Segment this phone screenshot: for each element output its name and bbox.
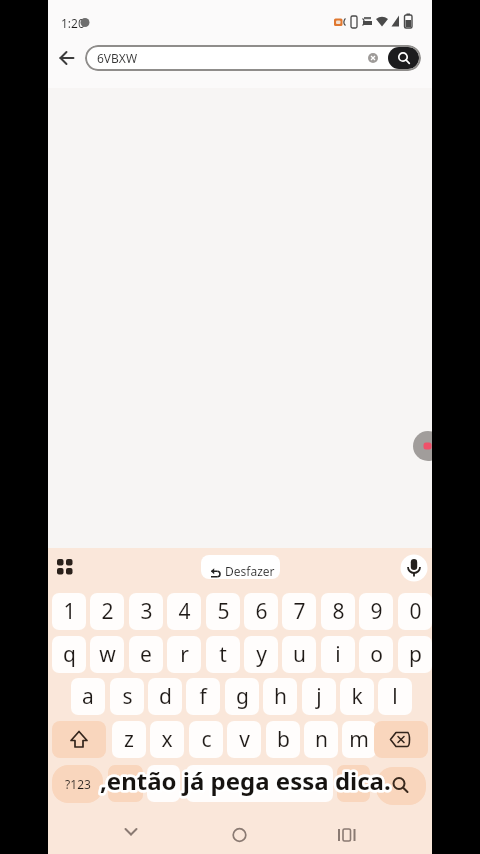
staticText: 5	[217, 597, 230, 626]
button[interactable]: g	[225, 678, 259, 715]
button[interactable]	[374, 721, 428, 758]
staticText: 4	[178, 597, 191, 626]
button[interactable]	[186, 765, 333, 802]
button[interactable]: s	[110, 678, 144, 715]
button[interactable]: 5	[206, 593, 240, 630]
staticText: 1:20	[61, 15, 85, 31]
button[interactable]: o	[359, 636, 393, 673]
staticText: i	[335, 640, 341, 669]
staticText: w	[99, 640, 116, 669]
staticText: g	[236, 682, 249, 711]
staticText: m	[349, 725, 369, 754]
staticText: x	[161, 725, 173, 754]
staticText: 8	[332, 597, 345, 626]
button[interactable]: t	[206, 636, 240, 673]
staticText: p	[409, 640, 422, 669]
staticText: q	[63, 640, 76, 669]
button[interactable]: 2	[90, 593, 124, 630]
button[interactable]	[108, 765, 143, 802]
staticText: ,então já pega essa dica.	[100, 764, 391, 797]
staticText: 7	[293, 597, 306, 626]
staticText: h	[274, 682, 287, 711]
staticText: ,então já pega essa dica.	[100, 764, 391, 797]
staticText: k	[351, 682, 363, 711]
button[interactable]: 6	[244, 593, 278, 630]
button[interactable]: r	[167, 636, 201, 673]
button[interactable]: a	[71, 678, 105, 715]
staticText: t	[219, 640, 227, 669]
button[interactable]: Desfazer	[201, 555, 280, 579]
staticText: n	[315, 725, 328, 754]
button[interactable]: f	[186, 678, 220, 715]
button[interactable]	[324, 816, 370, 850]
staticText: c	[201, 725, 212, 754]
staticText: 1	[63, 597, 76, 626]
button[interactable]: e	[129, 636, 163, 673]
staticText: ?123	[65, 776, 91, 792]
button[interactable]: v	[227, 721, 261, 758]
button[interactable]: w	[90, 636, 124, 673]
staticText: 0	[409, 597, 422, 626]
staticText: z	[124, 725, 134, 754]
staticText: b	[277, 725, 290, 754]
staticText: s	[122, 682, 133, 711]
button[interactable]: m	[342, 721, 376, 758]
button[interactable]: k	[340, 678, 374, 715]
button[interactable]: 8	[321, 593, 355, 630]
staticText: 9	[370, 597, 383, 626]
staticText: f	[199, 682, 207, 711]
button[interactable]: u	[282, 636, 316, 673]
button[interactable]: 9	[359, 593, 393, 630]
button[interactable]: ?123	[52, 765, 103, 803]
button[interactable]	[216, 816, 262, 850]
button[interactable]: j	[302, 678, 336, 715]
staticText: o	[370, 640, 383, 669]
button[interactable]: c	[189, 721, 223, 758]
button[interactable]: 6VBXW	[85, 45, 421, 71]
button[interactable]: 4	[167, 593, 201, 630]
button[interactable]	[337, 765, 370, 802]
button[interactable]: b	[266, 721, 300, 758]
button[interactable]: p	[398, 636, 432, 673]
staticText: 3	[140, 597, 153, 626]
staticText: e	[140, 640, 152, 669]
button[interactable]: 3	[129, 593, 163, 630]
button[interactable]: q	[52, 636, 86, 673]
staticText: l	[392, 682, 398, 711]
button[interactable]: l	[378, 678, 412, 715]
staticText: 6	[255, 597, 268, 626]
staticText: 2	[101, 597, 114, 626]
button[interactable]	[51, 553, 81, 583]
button[interactable]: z	[112, 721, 146, 758]
button[interactable]: 7	[282, 593, 316, 630]
button[interactable]: 1	[52, 593, 86, 630]
button[interactable]: d	[148, 678, 182, 715]
staticText: a	[82, 682, 94, 711]
button[interactable]: i	[321, 636, 355, 673]
button[interactable]: h	[263, 678, 297, 715]
staticText: j	[316, 682, 322, 711]
button[interactable]: x	[150, 721, 184, 758]
staticText: u	[293, 640, 306, 669]
button[interactable]: n	[304, 721, 338, 758]
button[interactable]	[108, 816, 154, 850]
staticText: r	[180, 640, 189, 669]
button[interactable]: y	[244, 636, 278, 673]
button[interactable]	[147, 765, 180, 802]
staticText: Desfazer	[225, 563, 275, 579]
staticText: 6VBXW	[97, 50, 138, 66]
button[interactable]	[54, 45, 80, 71]
staticText: d	[159, 682, 172, 711]
staticText: v	[239, 725, 250, 754]
button[interactable]	[52, 721, 106, 758]
button[interactable]	[376, 767, 426, 805]
staticText: y	[256, 640, 267, 669]
button[interactable]: 0	[398, 593, 432, 630]
button[interactable]	[388, 47, 419, 69]
